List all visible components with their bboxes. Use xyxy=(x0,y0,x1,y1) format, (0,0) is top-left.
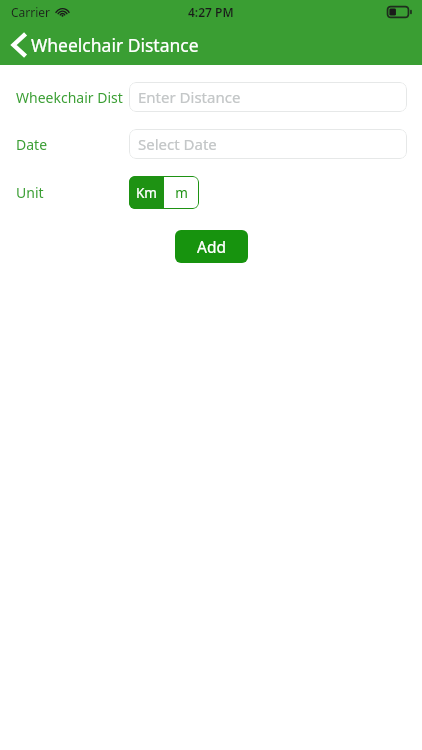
staticText: Unit xyxy=(16,183,44,202)
button[interactable]: Enter Distance xyxy=(129,82,407,112)
staticText: m xyxy=(175,184,188,202)
button[interactable]: Add xyxy=(175,230,248,263)
staticText: Carrier xyxy=(11,4,51,20)
staticText: Wheekchair Dist xyxy=(16,88,123,107)
button[interactable]: Select Date xyxy=(129,129,407,159)
staticText: Add xyxy=(197,236,226,257)
button[interactable]: Back xyxy=(0,29,209,61)
staticText: Km xyxy=(136,184,157,202)
other: Back xyxy=(12,34,25,56)
staticText: Date xyxy=(16,135,48,154)
staticText: Select Date xyxy=(138,134,217,154)
staticText: Wheelchair Distance xyxy=(31,33,199,57)
staticText: Enter Distance xyxy=(138,87,241,107)
button[interactable]: m xyxy=(164,176,199,209)
button[interactable]: Km xyxy=(129,176,164,209)
staticText: 4:27 PM xyxy=(188,4,234,20)
